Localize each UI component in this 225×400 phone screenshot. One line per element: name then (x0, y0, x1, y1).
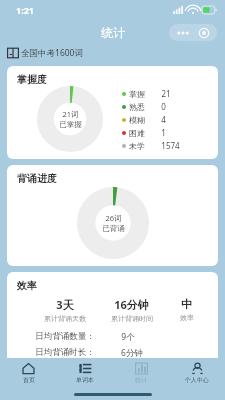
staticText: 6分钟 (121, 347, 143, 359)
staticText: 16分钟 (114, 297, 149, 312)
staticText: 9个 (121, 331, 135, 343)
staticText: 熟悉 (129, 102, 145, 112)
staticText: 掌握度 (17, 73, 47, 86)
button[interactable]: 首页 (0, 358, 57, 388)
staticText: 掌握 (129, 89, 145, 99)
staticText: 累计背诵天数 (44, 314, 86, 323)
staticText: 模糊 (129, 115, 145, 125)
staticText: 统计 (101, 25, 125, 40)
staticText: 效率 (17, 279, 37, 292)
button[interactable]: 个人中心 (169, 358, 225, 388)
staticText: 1 (161, 127, 166, 138)
staticText: 已背诵 (102, 224, 125, 233)
staticText: 未学 (129, 141, 145, 151)
staticText: 日均背诵时长： (35, 347, 95, 358)
staticText: 3天 (56, 297, 74, 312)
staticText: 个人中心 (185, 376, 209, 384)
staticText: 日均背诵数量： (35, 331, 95, 342)
staticText: 26词 (105, 213, 122, 223)
button[interactable]: 单词本 (57, 358, 113, 388)
staticText: 0 (161, 101, 166, 112)
staticText: 困难 (129, 128, 145, 138)
staticText: 全国中考1600词 (21, 47, 83, 59)
staticText: 统计 (135, 376, 147, 384)
staticText: 背诵进度 (17, 172, 57, 185)
button[interactable]: More and close (169, 24, 217, 41)
staticText: 已掌握 (59, 120, 82, 129)
staticText: 累计背诵时间 (111, 314, 153, 323)
button[interactable]: 统计 (113, 358, 169, 388)
staticText: 4 (161, 114, 166, 125)
staticText: 21 (161, 88, 171, 99)
staticText: 中 (181, 297, 192, 311)
staticText: 单词本 (76, 376, 94, 384)
staticText: 首页 (23, 376, 35, 384)
staticText: 1:21 (16, 4, 34, 16)
staticText: 效率 (180, 313, 194, 322)
staticText: 21词 (62, 109, 79, 119)
staticText: 1574 (161, 140, 180, 151)
